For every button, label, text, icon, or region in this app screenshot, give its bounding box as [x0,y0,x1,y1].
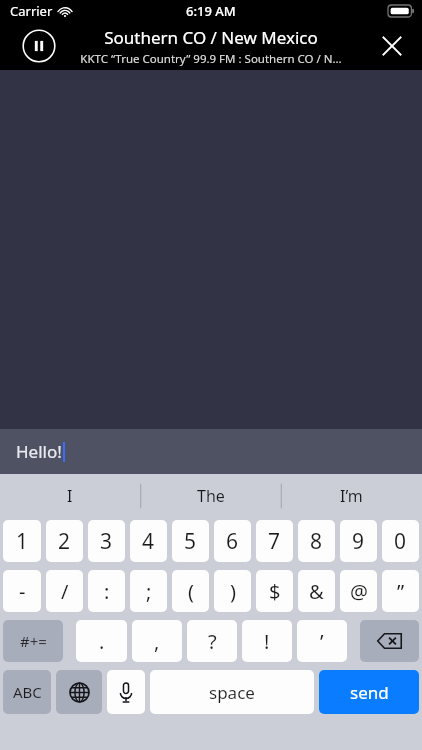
staticText: & [309,578,324,605]
staticText: ( [188,578,194,605]
staticText: send [350,681,389,704]
button[interactable]: $ [256,570,293,612]
button[interactable]: 6 [214,520,251,562]
staticText: ! [264,628,270,655]
button[interactable]: I [0,474,140,518]
button[interactable]: ’ [297,620,347,662]
button[interactable]: 4 [130,520,167,562]
button[interactable]: #+= [3,620,63,662]
staticText: $ [269,578,281,605]
button[interactable]: ABC [3,670,51,714]
staticText: 0 [394,527,407,556]
button[interactable]: 0 [382,520,419,562]
button[interactable]: ” [382,570,419,612]
button[interactable]: 7 [256,520,293,562]
staticText: I’m [340,485,363,507]
staticText: space [209,681,255,704]
staticText: 5 [184,527,197,556]
staticText: ? [208,628,217,655]
staticText: - [19,578,26,605]
button[interactable]: 8 [298,520,335,562]
button[interactable]: Voice input [107,670,145,714]
staticText: KKTC “True Country” 99.9 FM : Southern C… [80,51,342,67]
button[interactable]: Close [374,28,410,64]
staticText: #+= [20,631,47,651]
button[interactable]: ) [214,570,251,612]
staticText: 2 [58,527,71,556]
button[interactable]: & [298,570,335,612]
staticText: 3 [100,527,113,556]
staticText: 7 [268,527,281,556]
staticText: 6 [226,527,239,556]
button[interactable]: 3 [88,520,125,562]
button[interactable]: Hello! [0,429,422,474]
staticText: The [197,485,225,507]
staticText: ” [397,578,405,605]
staticText: 6:19 AM [186,2,236,20]
button[interactable]: send [319,670,419,714]
button[interactable]: space [150,670,314,714]
staticText: 1 [16,527,29,556]
staticText: 8 [310,527,323,556]
staticText: 4 [142,527,155,556]
button[interactable]: : [88,570,125,612]
staticText: Southern CO / New Mexico [104,26,318,49]
button[interactable]: @ [340,570,377,612]
staticText: . [99,628,105,655]
button[interactable]: Backspace [360,620,419,662]
staticText: I [67,485,73,507]
button[interactable]: 5 [172,520,209,562]
button[interactable]: Change keyboard language [56,670,102,714]
staticText: ) [230,578,236,605]
staticText: ABC [13,682,42,702]
button[interactable]: 1 [3,520,41,562]
staticText: : [104,578,110,605]
button[interactable]: Pause [22,29,56,63]
button[interactable]: I’m [281,474,422,518]
button[interactable]: ; [130,570,167,612]
button[interactable]: ( [172,570,209,612]
button[interactable]: ? [187,620,237,662]
button[interactable]: - [3,570,41,612]
button[interactable]: ! [242,620,292,662]
button[interactable]: The [140,474,281,518]
button[interactable]: 9 [340,520,377,562]
button[interactable]: , [132,620,182,662]
button[interactable]: 2 [46,520,83,562]
staticText: ’ [320,628,324,655]
staticText: 9 [352,527,365,556]
button[interactable]: . [76,620,127,662]
button[interactable]: / [46,570,83,612]
staticText: ; [146,578,152,605]
staticText: Hello! [16,440,62,463]
staticText: , [154,628,160,655]
staticText: / [61,578,69,605]
staticText: Carrier [10,2,53,20]
staticText: @ [350,578,368,605]
